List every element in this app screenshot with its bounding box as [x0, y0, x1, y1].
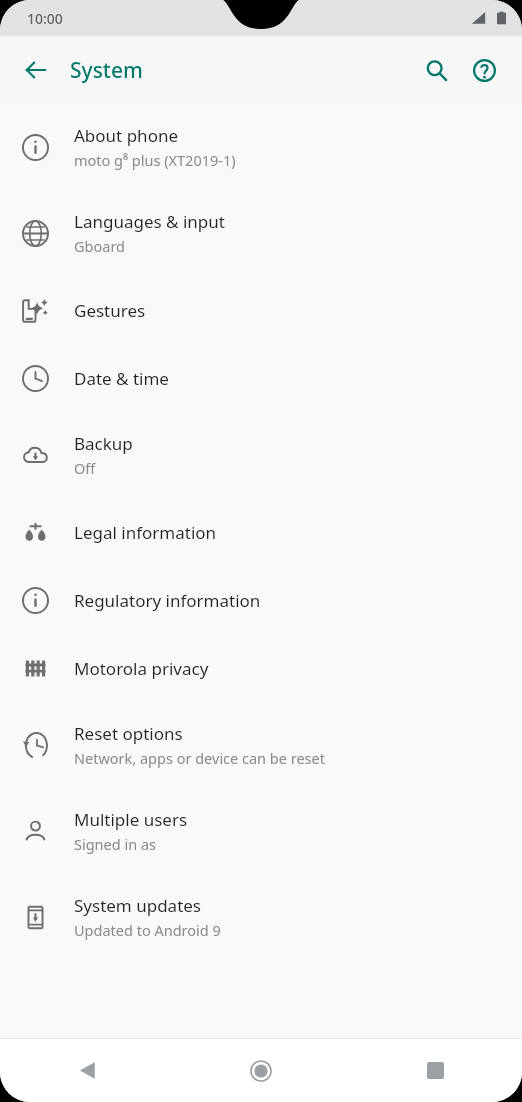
staticText: Legal information [74, 521, 217, 544]
button[interactable]: Backup [0, 412, 522, 498]
staticText: Signed in as [74, 834, 156, 854]
button[interactable]: Legal information [0, 498, 522, 566]
staticText: Motorola privacy [74, 657, 209, 680]
button[interactable]: Regulatory information [0, 566, 522, 634]
staticText: Languages & input [74, 210, 225, 233]
staticText: 10:00 [27, 9, 63, 28]
staticText: System updates [74, 894, 202, 917]
button[interactable]: Multiple users [0, 788, 522, 874]
staticText: Date & time [74, 367, 169, 390]
button[interactable]: Date & time [0, 344, 522, 412]
button[interactable]: Search [412, 46, 460, 94]
staticText: Updated to Android 9 [74, 920, 221, 940]
button[interactable]: Reset options [0, 702, 522, 788]
staticText: System [70, 56, 143, 85]
staticText: Gestures [74, 299, 146, 322]
staticText: Regulatory information [74, 589, 261, 612]
button[interactable]: System updates [0, 874, 522, 960]
staticText: Network, apps or device can be reset [74, 748, 325, 768]
staticText: Off [74, 458, 96, 478]
button[interactable]: Back [12, 46, 60, 94]
staticText: About phone [74, 124, 179, 147]
staticText: Gboard [74, 236, 125, 256]
button[interactable]: Motorola privacy [0, 634, 522, 702]
button[interactable]: Gestures [0, 276, 522, 344]
staticText: Backup [74, 432, 133, 455]
staticText: Reset options [74, 722, 183, 745]
staticText: Multiple users [74, 808, 188, 831]
button[interactable]: Home [174, 1039, 348, 1102]
button[interactable]: Languages & input [0, 190, 522, 276]
button[interactable]: About phone [0, 104, 522, 190]
button[interactable]: Recent apps [348, 1039, 522, 1102]
button[interactable]: Help [460, 46, 508, 94]
button[interactable]: Back [0, 1039, 174, 1102]
staticText: moto g⁸ plus (XT2019-1) [74, 150, 236, 170]
